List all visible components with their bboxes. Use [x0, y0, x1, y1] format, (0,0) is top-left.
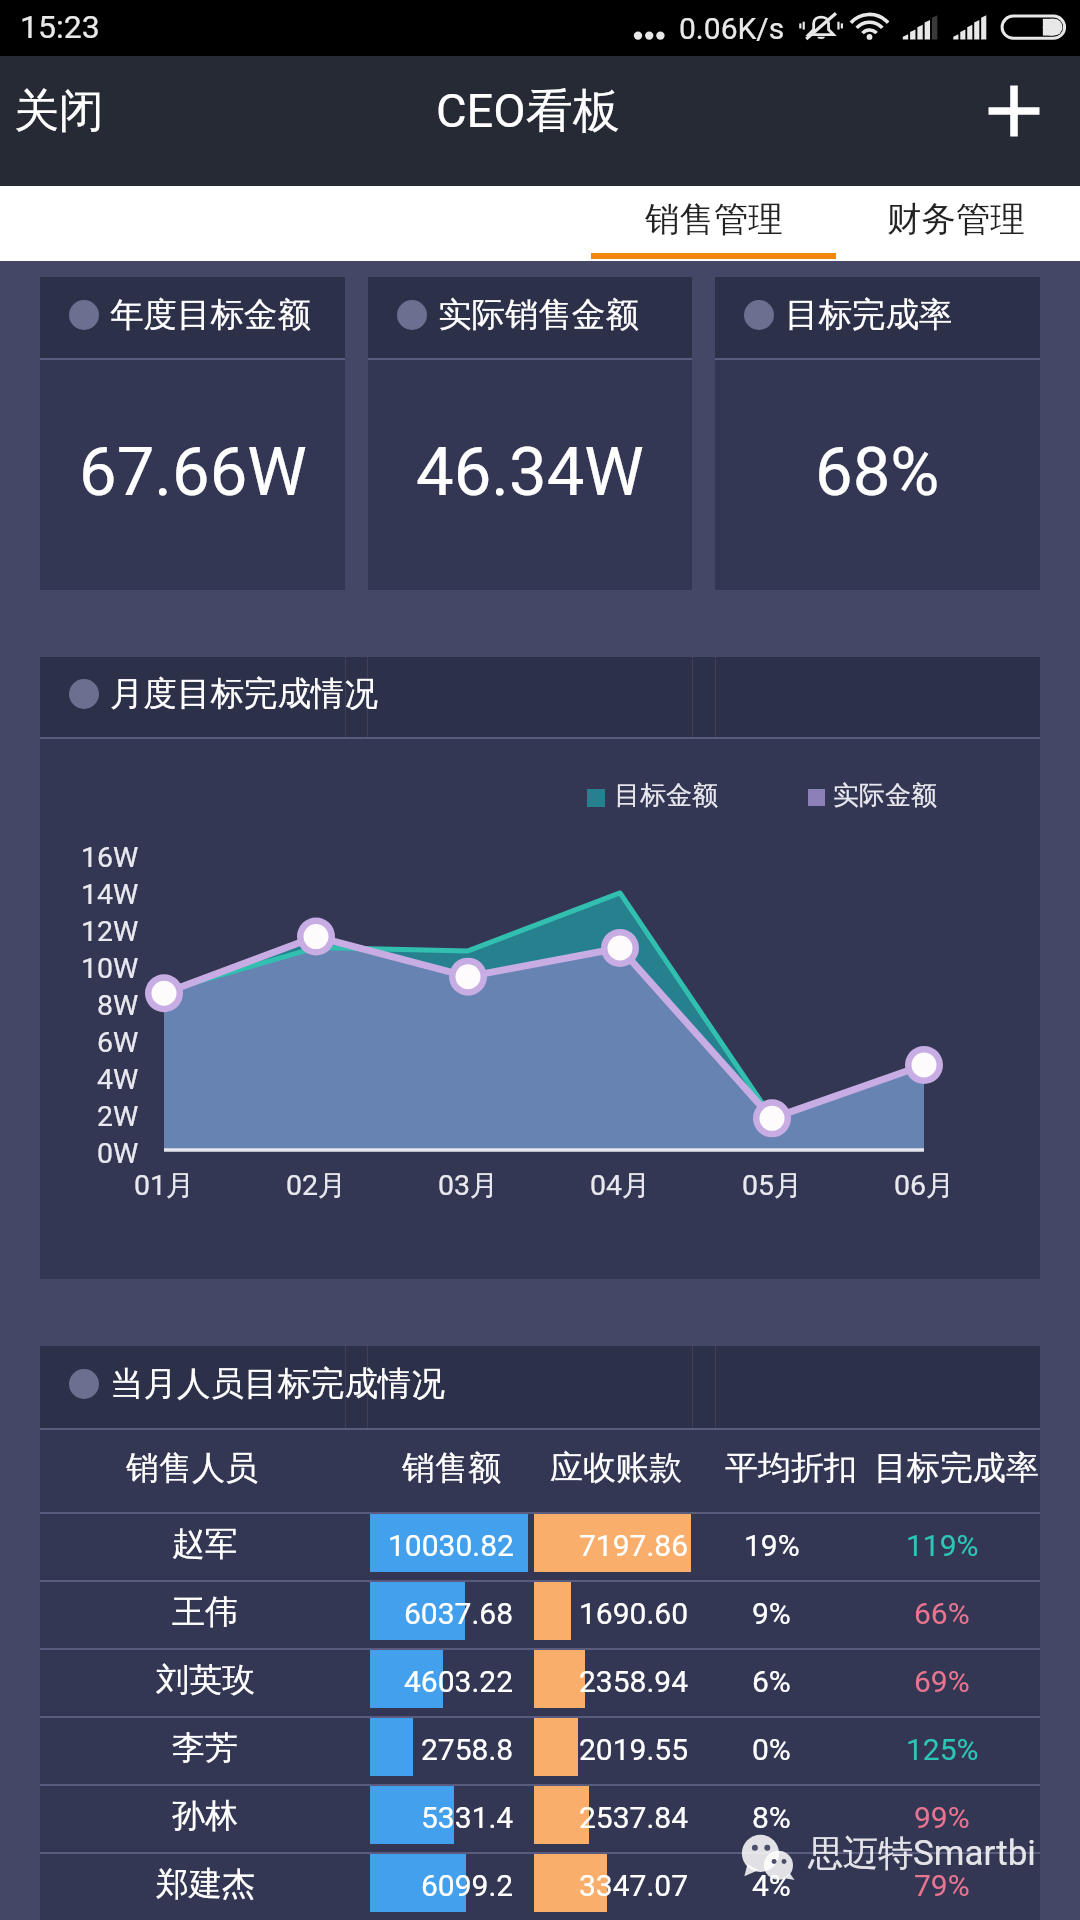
staticText: 2019.55 — [579, 1732, 689, 1767]
staticText: 125% — [906, 1732, 979, 1767]
staticText: 5331.4 — [421, 1800, 514, 1835]
staticText: 0.06K/s — [679, 11, 785, 46]
staticText: 思迈特Smartbi — [808, 1831, 1036, 1875]
staticText: CEO看板 — [436, 82, 620, 141]
staticText: 6W — [97, 1026, 139, 1059]
button[interactable]: 关闭 — [0, 56, 118, 186]
button[interactable]: 年度目标金额 — [40, 277, 345, 590]
staticText: 119% — [906, 1528, 979, 1563]
staticText: 8W — [97, 989, 139, 1022]
staticText: 69% — [914, 1664, 970, 1699]
staticText: 4603.22 — [404, 1664, 514, 1699]
staticText: 应收账款 — [550, 1447, 682, 1489]
staticText: 年度目标金额 — [110, 294, 311, 336]
button[interactable]: 实际销售金额 — [368, 277, 692, 590]
staticText: 9% — [752, 1596, 791, 1631]
staticText: 14W — [81, 878, 139, 911]
staticText: 99% — [914, 1800, 970, 1835]
staticText: 0% — [752, 1732, 791, 1767]
staticText: 刘英玫 — [156, 1659, 255, 1701]
staticText: 6037.68 — [404, 1596, 514, 1631]
staticText: 8% — [752, 1800, 791, 1835]
staticText: 7197.86 — [579, 1528, 689, 1563]
button[interactable]: 王伟 — [40, 1582, 1040, 1648]
staticText: 王伟 — [172, 1591, 238, 1633]
staticText: 2358.94 — [579, 1664, 689, 1699]
staticText: 月度目标完成情况 — [110, 673, 378, 715]
staticText: 05月 — [742, 1168, 803, 1204]
button[interactable]: 李芳 — [40, 1718, 1040, 1784]
staticText: 目标金额 — [614, 779, 718, 812]
staticText: 12W — [81, 915, 139, 948]
button[interactable]: 刘英玫 — [40, 1650, 1040, 1716]
staticText: 目标完成率 — [874, 1447, 1039, 1489]
staticText: 郑建杰 — [156, 1863, 255, 1905]
staticText: 66% — [914, 1596, 970, 1631]
staticText: 孙林 — [172, 1795, 238, 1837]
staticText: 68% — [815, 433, 940, 512]
staticText: 3347.07 — [579, 1868, 689, 1903]
staticText: 实际金额 — [833, 779, 937, 812]
button[interactable]: 郑建杰 — [40, 1854, 1040, 1920]
staticText: 2758.8 — [421, 1732, 514, 1767]
staticText: 02月 — [286, 1168, 347, 1204]
staticText: 赵军 — [172, 1523, 238, 1565]
staticText: 平均折扣 — [725, 1447, 857, 1489]
staticText: 06月 — [894, 1168, 955, 1204]
staticText: 10W — [81, 952, 139, 985]
button[interactable]: 销售管理 — [591, 186, 836, 261]
staticText: 财务管理 — [887, 198, 1025, 241]
staticText: 1690.60 — [579, 1596, 689, 1631]
button[interactable]: 月度目标完成情况 — [40, 657, 1040, 1279]
staticText: 79% — [914, 1868, 970, 1903]
staticText: 2537.84 — [579, 1800, 689, 1835]
staticText: 2W — [97, 1100, 139, 1133]
button[interactable]: Add — [980, 56, 1080, 186]
staticText: 16W — [81, 841, 139, 874]
staticText: 销售人员 — [126, 1447, 258, 1489]
staticText: 李芳 — [172, 1727, 238, 1769]
button[interactable]: 财务管理 — [841, 186, 1071, 261]
staticText: 10030.82 — [388, 1528, 514, 1563]
staticText: 当月人员目标完成情况 — [110, 1363, 445, 1405]
button[interactable]: 赵军 — [40, 1514, 1040, 1580]
staticText: 实际销售金额 — [438, 294, 639, 336]
staticText: 销售额 — [402, 1447, 501, 1489]
staticText: 4% — [752, 1868, 791, 1903]
staticText: 6% — [752, 1664, 791, 1699]
button[interactable]: 孙林 — [40, 1786, 1040, 1852]
staticText: 销售管理 — [645, 198, 783, 241]
staticText: 01月 — [134, 1168, 195, 1204]
staticText: 4W — [97, 1063, 139, 1096]
staticText: 6099.2 — [421, 1868, 514, 1903]
staticText: 46.34W — [416, 433, 644, 512]
button[interactable]: 目标完成率 — [715, 277, 1040, 590]
staticText: 04月 — [590, 1168, 651, 1204]
staticText: 0W — [97, 1137, 139, 1170]
staticText: 19% — [744, 1528, 800, 1563]
staticText: 03月 — [438, 1168, 499, 1204]
staticText: 15:23 — [20, 8, 100, 46]
staticText: 目标完成率 — [785, 294, 953, 336]
staticText: 关闭 — [14, 83, 104, 140]
staticText: 67.66W — [79, 433, 307, 512]
